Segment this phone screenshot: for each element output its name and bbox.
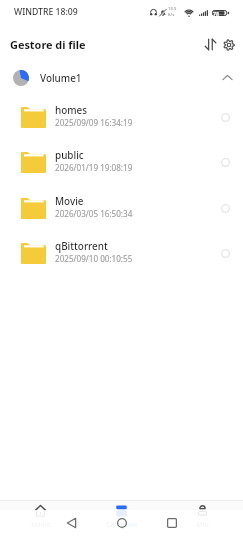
staticText: Mio [196,520,209,529]
button[interactable]: Categorie [81,500,162,529]
staticText: K/s [168,12,175,18]
button[interactable]: Mio [162,500,243,529]
button[interactable]: Recents [160,511,184,535]
button[interactable]: Movie [0,186,243,231]
staticText: 2026/01/19 19:08:19 [55,162,133,173]
button[interactable]: homes [0,95,243,140]
button[interactable]: Select public [215,152,236,173]
staticText: Volume1 [40,71,82,84]
button[interactable]: Sort [199,33,222,56]
staticText: public [55,148,84,161]
button[interactable]: Volume1 [0,58,243,96]
button[interactable]: public [0,140,243,185]
staticText: Movie [55,194,84,207]
staticText: homes [55,103,88,116]
staticText: Gestore di file [10,37,86,52]
button[interactable]: qBittorrent [0,231,243,276]
staticText: 15.5 [168,6,177,12]
button[interactable]: Settings [217,33,240,56]
button[interactable]: Back [59,511,83,535]
button[interactable]: Select Movie [215,198,236,219]
staticText: 2025/09/10 00:10:55 [55,253,133,264]
staticText: 2026/03/05 16:50:34 [55,208,133,219]
staticText: 78 [213,10,220,17]
staticText: 2025/09/09 16:34:19 [55,117,133,128]
staticText: qBittorrent [55,239,108,252]
staticText: WINDTRE 18:09 [14,6,78,18]
button[interactable]: Home [0,500,81,529]
staticText: Home [31,520,51,529]
button[interactable]: Select homes [215,107,236,128]
button[interactable]: Home [110,511,134,535]
button[interactable]: Select qBittorrent [215,243,236,264]
staticText: Categorie [106,520,138,529]
